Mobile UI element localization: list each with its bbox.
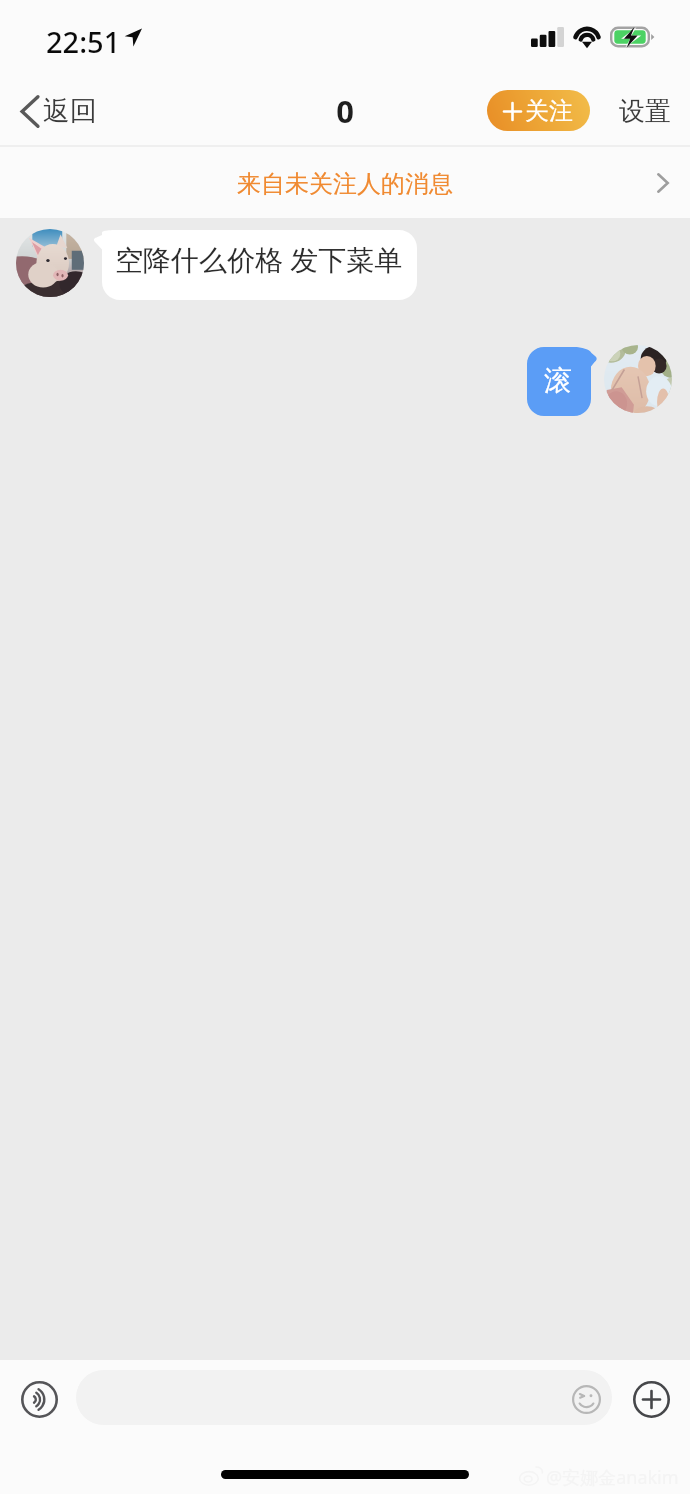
staticText: 22:51 (46, 22, 121, 61)
staticText: 0 (0, 90, 690, 132)
button[interactable]: 关注 (487, 90, 590, 131)
button[interactable]: 设置 (610, 88, 680, 134)
button[interactable]: More options (626, 1374, 677, 1425)
staticText: 来自未关注人的消息 (237, 169, 453, 199)
staticText: 滚 (544, 363, 572, 398)
staticText: 设置 (619, 95, 671, 128)
button[interactable]: 返回 (0, 80, 111, 142)
button[interactable]: Emoji (566, 1379, 606, 1419)
button[interactable] (76, 1370, 612, 1425)
staticText: 空降什么价格 发下菜单 (115, 240, 403, 278)
staticText: 返回 (43, 94, 97, 128)
button[interactable]: 滚 (527, 347, 591, 416)
button[interactable]: 来自未关注人的消息 (0, 147, 690, 218)
staticText: 关注 (525, 96, 573, 126)
button[interactable]: Voice message (14, 1374, 65, 1425)
button[interactable]: 空降什么价格 发下菜单 (94, 230, 418, 300)
